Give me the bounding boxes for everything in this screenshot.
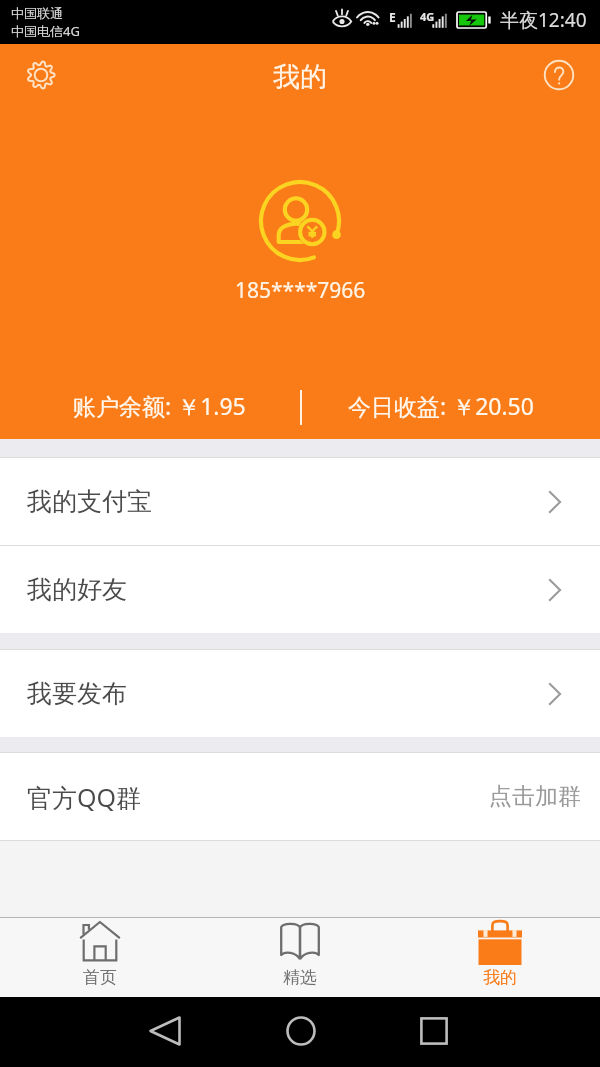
staticText: 我要发布 (27, 678, 127, 709)
staticText: 中国电信4G (11, 22, 80, 40)
button[interactable]: Settings (17, 51, 65, 99)
button[interactable]: 首页 (0, 918, 200, 988)
button[interactable]: 我的支付宝 (0, 458, 600, 545)
button[interactable]: Home (277, 1007, 325, 1055)
staticText: 官方QQ群 (27, 780, 142, 814)
staticText: 中国联通 (11, 5, 63, 21)
button[interactable]: 官方QQ群 (0, 753, 600, 840)
staticText: 今日收益: ￥20.50 (348, 390, 534, 421)
staticText: 4G (420, 9, 435, 24)
button[interactable]: Recents (410, 1007, 458, 1055)
staticText: E (389, 9, 396, 25)
staticText: 点击加群 (489, 782, 581, 811)
staticText: 我的好友 (27, 574, 127, 605)
button[interactable]: 我的 (400, 918, 600, 988)
button[interactable]: 我要发布 (0, 650, 600, 737)
staticText: 我的 (273, 60, 327, 94)
button[interactable]: 我的好友 (0, 546, 600, 633)
staticText: 半夜12:40 (500, 7, 587, 33)
button[interactable]: Help (535, 51, 583, 99)
staticText: 账户余额: ￥1.95 (73, 390, 246, 421)
staticText: 185****7966 (235, 276, 366, 305)
staticText: 我的 (483, 967, 517, 988)
button[interactable]: Back (141, 1007, 189, 1055)
staticText: 精选 (283, 967, 317, 988)
staticText: 我的支付宝 (27, 486, 152, 517)
button[interactable]: 精选 (200, 918, 400, 988)
staticText: 首页 (83, 967, 117, 988)
